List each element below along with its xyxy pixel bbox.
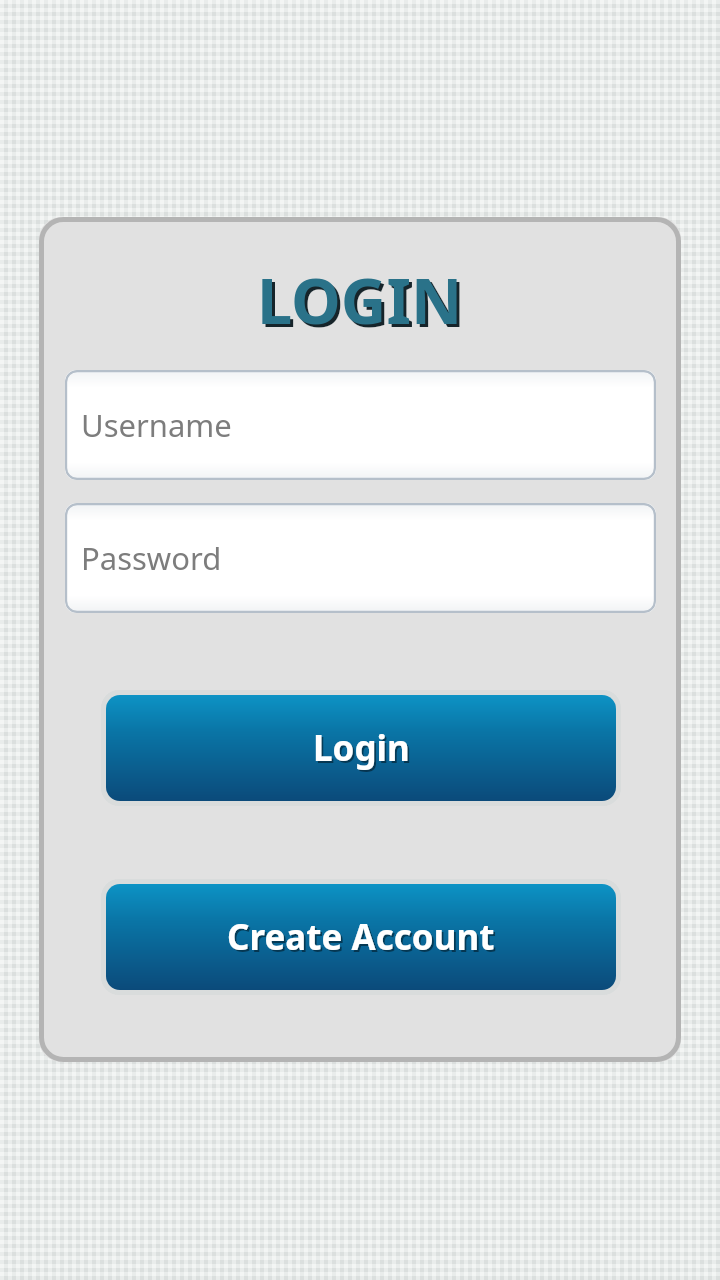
staticText: LOGIN: [260, 260, 466, 346]
staticText: Login: [313, 724, 410, 772]
staticText: LOGIN: [257, 257, 463, 343]
staticText: Password: [81, 537, 222, 579]
staticText: Create Account: [227, 913, 495, 961]
staticText: Username: [81, 404, 232, 446]
button[interactable]: Create Account: [101, 879, 621, 995]
staticText: Create Account: [229, 915, 497, 963]
button[interactable]: Password: [65, 503, 656, 613]
button[interactable]: Login: [101, 690, 621, 806]
staticText: Login: [315, 726, 412, 774]
button[interactable]: Username: [65, 370, 656, 480]
